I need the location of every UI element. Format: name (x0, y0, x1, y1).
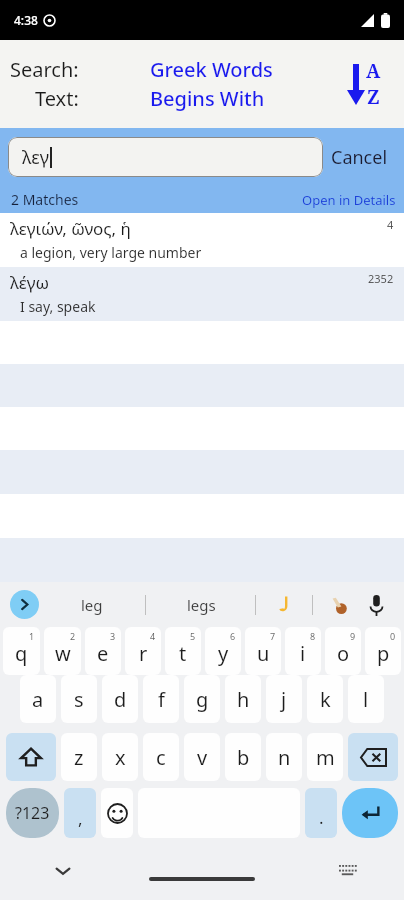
button[interactable]: i (285, 627, 321, 675)
staticText: k (320, 686, 331, 713)
staticText: Begins With (150, 85, 265, 112)
button[interactable]: b (225, 733, 261, 781)
button[interactable]: Cancel (323, 145, 396, 170)
staticText: 0 (390, 630, 396, 642)
button[interactable]: λέγω (0, 267, 404, 321)
staticText: h (237, 686, 250, 713)
button[interactable]: p (365, 627, 401, 675)
staticText: d (114, 686, 127, 713)
button[interactable]: e (85, 627, 121, 675)
button[interactable]: Change keyboard (332, 856, 362, 886)
staticText: λέγω (10, 271, 368, 294)
button[interactable]: t (165, 627, 201, 675)
staticText: g (196, 686, 209, 713)
button[interactable]: λεγιών, ῶνος, ἡ (0, 213, 404, 267)
button[interactable]: Voice input (362, 591, 390, 619)
staticText: Open in Details (302, 191, 396, 209)
button[interactable]: Drumstick emoji (326, 592, 352, 618)
staticText: I say, speak (20, 297, 96, 316)
button[interactable]: v (184, 733, 220, 781)
button[interactable]: z (61, 733, 97, 781)
button[interactable]: m (307, 733, 343, 781)
button[interactable]: ?123 (6, 788, 59, 838)
staticText: λεγ (22, 145, 50, 170)
button[interactable]: n (266, 733, 302, 781)
staticText: o (337, 640, 350, 667)
staticText: w (55, 640, 71, 667)
staticText: 1 (29, 630, 35, 642)
button[interactable]: Emoji (101, 788, 133, 838)
button[interactable]: d (102, 675, 138, 723)
staticText: a legion, very large number (20, 243, 202, 262)
staticText: λεγιών, ῶνος, ἡ (10, 217, 387, 240)
staticText: 7 (270, 630, 276, 642)
staticText: v (197, 744, 208, 771)
button[interactable]: y (205, 627, 241, 675)
staticText: q (15, 640, 28, 667)
staticText: legs (187, 595, 216, 615)
button[interactable]: More suggestions (10, 590, 39, 619)
staticText: t (179, 640, 187, 667)
button[interactable]: λεγ (8, 137, 323, 177)
staticText: 3 (110, 630, 116, 642)
button[interactable]: k (307, 675, 343, 723)
staticText: i (300, 640, 306, 667)
button[interactable]: u (245, 627, 281, 675)
button[interactable]: Leg emoji (272, 592, 298, 618)
button[interactable]: x (102, 733, 138, 781)
button[interactable]: w (44, 627, 81, 675)
staticText: y (218, 640, 229, 667)
staticText: A (366, 58, 381, 84)
staticText: ?123 (15, 802, 50, 824)
staticText: p (377, 640, 390, 667)
staticText: Z (367, 84, 380, 110)
button[interactable]: f (143, 675, 179, 723)
staticText: 2 Matches (11, 190, 79, 209)
button[interactable]: Hide keyboard (48, 856, 78, 886)
staticText: j (281, 686, 287, 713)
button[interactable]: r (125, 627, 161, 675)
staticText: a (32, 686, 44, 713)
staticText: 8 (310, 630, 316, 642)
button[interactable]: Open in Details (302, 191, 404, 209)
button[interactable]: a (20, 675, 56, 723)
staticText: x (115, 744, 126, 771)
staticText: n (278, 744, 291, 771)
staticText: z (74, 744, 84, 771)
staticText: Cancel (331, 145, 388, 170)
button[interactable]: , (64, 788, 96, 838)
button[interactable]: l (348, 675, 384, 723)
button[interactable]: Sort A to Z (332, 53, 394, 115)
button[interactable]: Enter (342, 788, 398, 838)
button[interactable]: Greek Words (150, 56, 273, 112)
staticText: 6 (230, 630, 236, 642)
staticText: 4 (150, 630, 156, 642)
staticText: 4:38 (14, 12, 38, 28)
staticText: r (139, 640, 148, 667)
staticText: u (257, 640, 270, 667)
staticText: 9 (350, 630, 356, 642)
button[interactable]: o (325, 627, 361, 675)
staticText: f (158, 686, 165, 713)
button[interactable]: c (143, 733, 179, 781)
button[interactable]: . (305, 788, 337, 838)
staticText: 4 (387, 217, 394, 232)
staticText: leg (81, 595, 103, 615)
button[interactable]: s (61, 675, 97, 723)
button[interactable]: j (266, 675, 302, 723)
staticText: s (74, 686, 84, 713)
staticText: , (78, 807, 83, 830)
staticText: Greek Words (150, 56, 273, 83)
button[interactable]: g (184, 675, 220, 723)
staticText: Text: (35, 85, 79, 112)
staticText: 2 (70, 630, 76, 642)
button[interactable]: Backspace (348, 733, 398, 781)
button[interactable]: Shift (6, 733, 56, 781)
button[interactable]: leg (81, 595, 103, 615)
button[interactable]: q (3, 627, 40, 675)
staticText: m (316, 744, 335, 771)
staticText: 5 (190, 630, 196, 642)
button[interactable]: h (225, 675, 261, 723)
button[interactable]: legs (187, 595, 216, 615)
